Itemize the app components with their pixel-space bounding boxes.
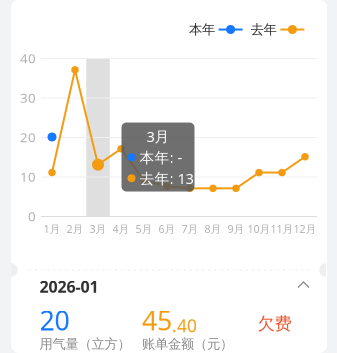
staticText: 20 <box>39 302 69 338</box>
staticText: 1月 <box>43 222 60 236</box>
staticText: 30 <box>20 89 36 106</box>
staticText: 9月 <box>227 222 244 236</box>
staticText: 12月 <box>293 222 316 236</box>
staticText: 40 <box>20 49 36 67</box>
staticText: 去年: 13 <box>139 168 193 188</box>
staticText: 6月 <box>158 222 175 236</box>
staticText: 账单金额（元） <box>142 336 233 352</box>
staticText: 11月 <box>270 222 293 236</box>
staticText: 欠费 <box>257 313 291 334</box>
staticText: 45 <box>142 302 172 338</box>
staticText: 4月 <box>112 222 129 236</box>
staticText: 0 <box>28 207 36 225</box>
staticText: 20 <box>20 128 36 146</box>
staticText: 10月 <box>247 222 270 236</box>
staticText: 7月 <box>181 222 198 236</box>
staticText: 3月 <box>89 222 106 236</box>
staticText: 8月 <box>204 222 221 236</box>
staticText: 本年: - <box>139 147 182 167</box>
staticText: 3月 <box>146 126 169 146</box>
staticText: 用气量（立方） <box>39 336 130 352</box>
button[interactable]: Collapse <box>293 277 314 293</box>
staticText: 2026-01 <box>39 276 98 297</box>
staticText: 去年 <box>251 21 277 38</box>
staticText: 10 <box>20 168 36 185</box>
staticText: 5月 <box>135 222 152 236</box>
staticText: 本年 <box>189 21 215 38</box>
staticText: .40 <box>172 314 197 337</box>
staticText: 2月 <box>66 222 83 236</box>
